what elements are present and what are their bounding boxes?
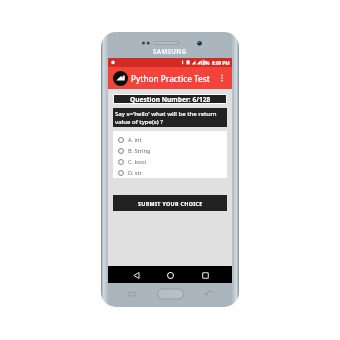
staticText: Python Practice Test [131,73,210,84]
staticText: B. String [128,147,151,155]
staticText: SUBMIT YOUR CHOICE [138,200,203,207]
button[interactable]: Recents [198,268,212,282]
button[interactable]: More options [215,71,229,85]
staticText: A. int [128,136,142,144]
staticText: C. bool [128,158,147,166]
button[interactable]: Home [163,268,177,282]
staticText: 8:09 PM [212,60,230,66]
staticText: 16% [200,60,210,66]
staticText: SAMSUNG [153,47,187,55]
staticText: D. str [128,169,142,177]
button[interactable]: A. int [118,134,227,145]
button[interactable]: B. String [118,145,227,156]
button[interactable]: Back [129,268,143,282]
button[interactable]: C. bool [118,156,227,167]
button[interactable]: D. str [118,167,227,178]
button[interactable]: SUBMIT YOUR CHOICE [113,195,227,211]
staticText: Question Number: 6/128 [130,95,211,103]
staticText: Say s='hello' what will be the return va… [115,110,225,125]
